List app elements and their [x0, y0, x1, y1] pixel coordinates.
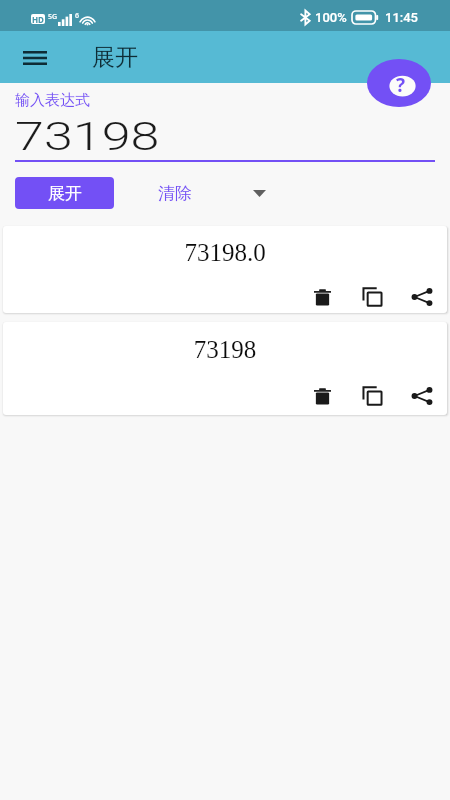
- button[interactable]: Share: [404, 378, 440, 414]
- button[interactable]: Delete: [304, 281, 340, 313]
- button[interactable]: 73198.0: [3, 226, 447, 313]
- button[interactable]: Delete: [304, 378, 340, 414]
- button[interactable]: Menu: [11, 34, 58, 81]
- button[interactable]: Help: [367, 59, 431, 107]
- button[interactable]: 清除: [138, 177, 212, 209]
- staticText: 11:45: [385, 10, 419, 25]
- staticText: 5G: [48, 12, 58, 22]
- button[interactable]: 展开: [15, 177, 114, 209]
- staticText: 73198: [3, 336, 447, 364]
- button[interactable]: More options: [241, 175, 277, 211]
- staticText: ?: [396, 72, 406, 98]
- staticText: 6: [75, 11, 80, 21]
- staticText: 73198: [15, 114, 160, 160]
- staticText: 输入表达式: [15, 91, 90, 110]
- staticText: 展开: [92, 43, 138, 72]
- staticText: HD: [32, 14, 44, 24]
- staticText: 73198.0: [3, 239, 447, 267]
- staticText: 展开: [48, 183, 82, 204]
- button[interactable]: Share: [404, 281, 440, 313]
- button[interactable]: Copy: [354, 281, 390, 313]
- staticText: 100%: [315, 10, 347, 25]
- staticText: 清除: [158, 183, 192, 204]
- button[interactable]: 73198: [3, 322, 447, 415]
- button[interactable]: Copy: [354, 378, 390, 414]
